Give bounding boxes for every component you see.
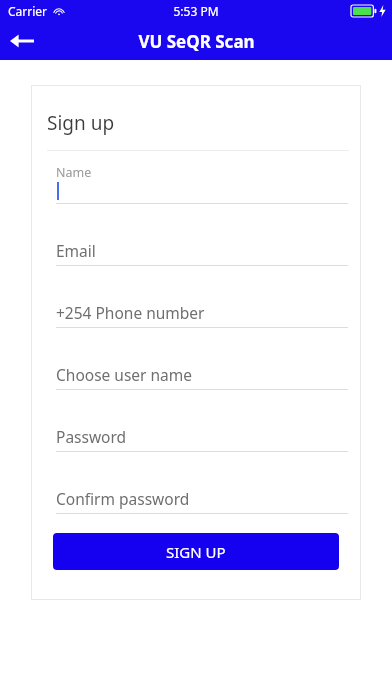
staticText: 5:53 PM [173,3,219,19]
staticText: Name [56,164,92,181]
staticText: +254 Phone number [56,302,205,323]
button[interactable]: SIGN UP [53,533,339,570]
staticText: SIGN UP [166,542,226,562]
staticText: Carrier [8,3,48,19]
staticText: VU SeQR Scan [138,30,255,53]
button[interactable]: +254 Phone number [56,288,348,328]
button[interactable]: Back [0,22,44,60]
button[interactable]: Email [56,226,348,266]
button[interactable]: Confirm password [56,474,348,514]
button[interactable]: Password [56,412,348,452]
button[interactable]: Name [56,164,348,204]
staticText: Password [56,426,127,447]
staticText: Confirm password [56,488,190,509]
staticText: Choose user name [56,364,193,385]
staticText: Sign up [47,110,115,136]
staticText: Email [56,240,96,261]
button[interactable]: Choose user name [56,350,348,390]
